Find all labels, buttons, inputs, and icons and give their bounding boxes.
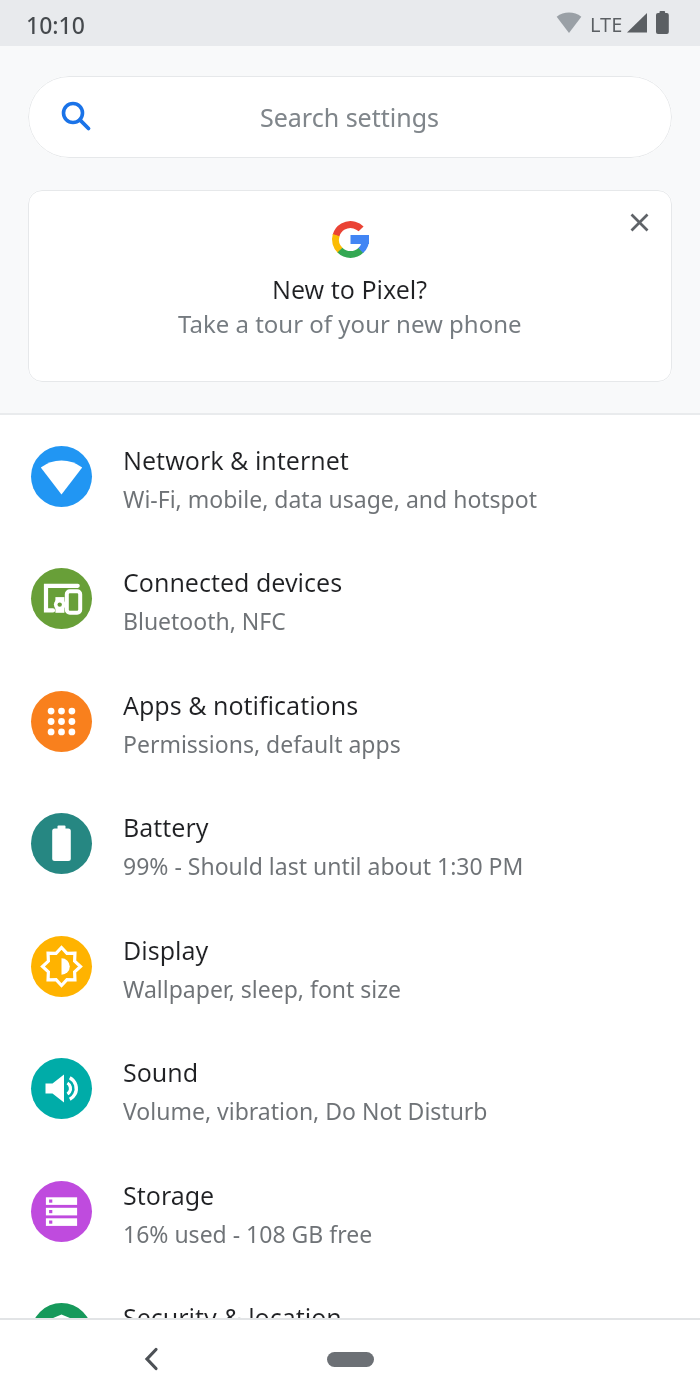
staticText: Connected devices (123, 565, 343, 599)
staticText: Bluetooth, NFC (123, 605, 286, 636)
staticText: Screen lock, fingerprint (123, 1340, 374, 1371)
button[interactable] (128, 1335, 176, 1383)
staticText: Network & internet (123, 443, 349, 477)
staticText: Take a tour of your new phone (178, 307, 522, 340)
button[interactable]: Search settings (28, 76, 672, 158)
button[interactable]: Network & internet (0, 416, 700, 538)
button[interactable]: Battery (0, 783, 700, 905)
staticText: Wi-Fi, mobile, data usage, and hotspot (123, 483, 537, 514)
staticText: 99% - Should last until about 1:30 PM (123, 850, 524, 881)
button[interactable]: Connected devices (0, 538, 700, 660)
button[interactable]: Sound (0, 1028, 700, 1150)
staticText: LTE (590, 11, 623, 38)
staticText: Storage (123, 1178, 215, 1212)
button[interactable]: Security & location (0, 1273, 700, 1395)
staticText: 16% used - 108 GB free (123, 1218, 373, 1249)
button[interactable]: Apps & notifications (0, 661, 700, 783)
staticText: Permissions, default apps (123, 728, 401, 759)
button[interactable]: Storage (0, 1151, 700, 1273)
staticText: Apps & notifications (123, 688, 359, 722)
staticText: Display (123, 933, 209, 967)
staticText: 10:10 (26, 9, 85, 40)
button[interactable] (620, 203, 658, 241)
staticText: Volume, vibration, Do Not Disturb (123, 1095, 488, 1126)
button[interactable]: Display (0, 906, 700, 1028)
staticText: Security & location (123, 1300, 342, 1334)
staticText: Sound (123, 1055, 199, 1089)
staticText: Search settings (260, 100, 440, 134)
button[interactable] (327, 1352, 374, 1367)
staticText: New to Pixel? (272, 272, 428, 306)
staticText: Battery (123, 810, 209, 844)
staticText: Wallpaper, sleep, font size (123, 973, 402, 1004)
